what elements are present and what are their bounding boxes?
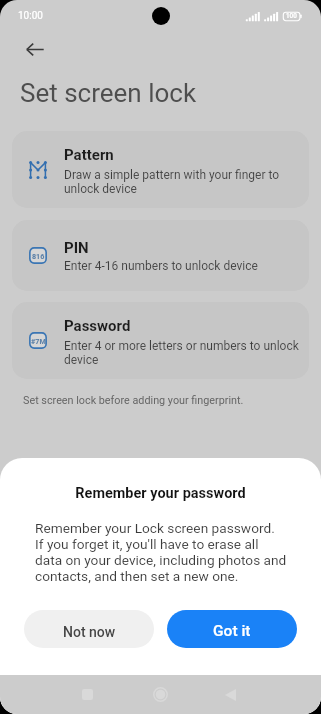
staticText: Enter 4-16 numbers to unlock device: [64, 259, 258, 273]
staticText: Set screen lock: [20, 78, 197, 108]
staticText: Set screen lock before adding your finge…: [23, 394, 244, 407]
button[interactable]: #7M: [12, 302, 309, 379]
staticText: Enter 4 or more letters or numbers to un…: [64, 339, 299, 367]
staticText: 100: [286, 12, 297, 19]
staticText: PIN: [64, 239, 89, 257]
staticText: Got it: [213, 622, 251, 640]
staticText: #7M: [31, 337, 46, 345]
button[interactable]: Back: [20, 34, 50, 64]
button[interactable]: Recent apps: [62, 675, 113, 714]
button[interactable]: 816: [12, 220, 309, 291]
staticText: Remember your Lock screen password. If y…: [35, 520, 287, 584]
staticText: Password: [64, 317, 131, 335]
staticText: Pattern: [64, 146, 114, 164]
staticText: 816: [32, 252, 45, 260]
button[interactable]: Got it: [167, 610, 297, 648]
staticText: Not now: [63, 624, 116, 640]
button[interactable]: Not now: [24, 610, 154, 648]
staticText: Draw a simple pattern with your finger t…: [64, 168, 280, 196]
button[interactable]: Pattern: [12, 131, 309, 208]
staticText: 10:00: [18, 10, 43, 22]
staticText: Remember your password: [0, 485, 321, 502]
